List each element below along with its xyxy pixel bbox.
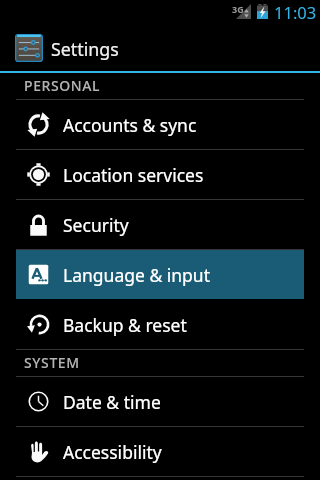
staticText: Location services (63, 163, 204, 187)
button[interactable]: Date & time (0, 377, 320, 426)
button[interactable]: Security (0, 200, 320, 249)
staticText: Accounts & sync (63, 113, 197, 137)
staticText: SYSTEM (24, 353, 80, 372)
button[interactable]: Location services (0, 150, 320, 199)
button[interactable]: Language & input (0, 250, 320, 299)
button[interactable]: Backup & reset (0, 300, 320, 349)
staticText: Backup & reset (63, 313, 187, 337)
staticText: Language & input (63, 263, 210, 287)
staticText: 11:03 (274, 1, 317, 23)
staticText: Security (63, 213, 129, 237)
button[interactable]: Settings (0, 23, 320, 71)
staticText: Date & time (63, 390, 161, 414)
staticText: PERSONAL (24, 76, 101, 95)
staticText: Accessibility (63, 440, 162, 464)
staticText: Settings (51, 37, 119, 61)
button[interactable]: Accounts & sync (0, 100, 320, 149)
button[interactable]: Accessibility (0, 427, 320, 476)
staticText: 3G (232, 3, 244, 15)
